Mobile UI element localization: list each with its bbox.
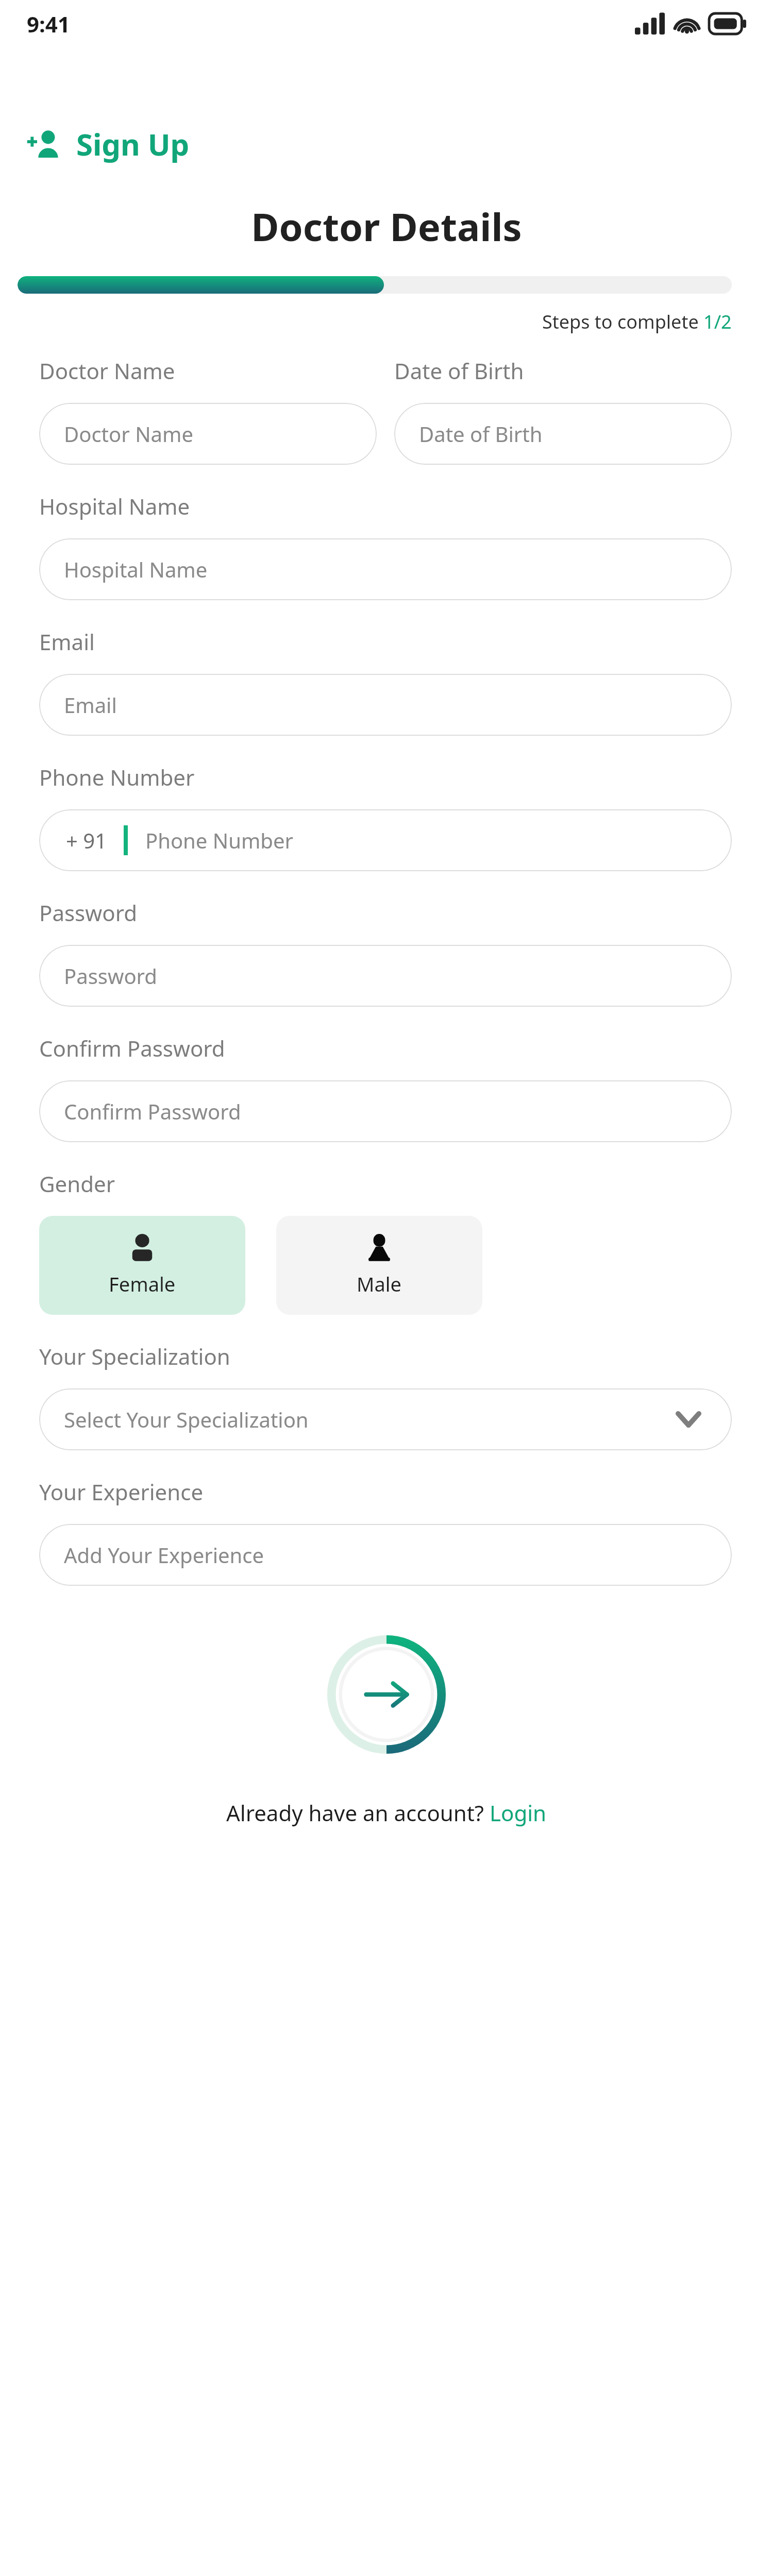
staticText: Gender	[39, 1169, 115, 1198]
staticText: Hospital Name	[64, 555, 208, 583]
button[interactable]: Sign Up	[27, 124, 190, 164]
button[interactable]: Date of Birth	[394, 403, 732, 465]
staticText: Doctor Name	[39, 356, 175, 385]
button[interactable]: Email	[39, 674, 732, 736]
button[interactable]: Select Your Specialization	[39, 1388, 732, 1450]
button[interactable]: Male	[276, 1216, 482, 1315]
button[interactable]: Doctor Name	[39, 403, 377, 465]
staticText: Password	[64, 962, 157, 990]
staticText: Email	[64, 691, 117, 719]
staticText: Doctor Name	[64, 420, 193, 448]
staticText: Select Your Specialization	[64, 1405, 309, 1433]
staticText: Male	[357, 1270, 402, 1297]
staticText: + 91	[66, 826, 107, 854]
button[interactable]: + 91	[39, 809, 732, 871]
staticText: Sign Up	[76, 124, 190, 164]
staticText: Already have an account? Login	[226, 1798, 547, 1827]
staticText: Add Your Experience	[64, 1541, 264, 1569]
staticText: Confirm Password	[64, 1097, 241, 1125]
button[interactable]: Hospital Name	[39, 538, 732, 600]
staticText: Doctor Details	[251, 200, 522, 252]
button[interactable]: Next step	[327, 1635, 446, 1754]
staticText: Email	[39, 627, 95, 656]
staticText: 9:41	[27, 9, 70, 39]
staticText: Confirm Password	[39, 1033, 225, 1063]
button[interactable]: Female	[39, 1216, 245, 1315]
staticText: Password	[39, 898, 137, 927]
staticText: Phone Number	[39, 762, 195, 792]
button[interactable]: Password	[39, 945, 732, 1007]
button[interactable]: Add Your Experience	[39, 1524, 732, 1586]
other: Open specialization list	[674, 1405, 703, 1434]
staticText: Steps to complete 1/2	[542, 309, 732, 334]
staticText: Phone Number	[145, 826, 293, 854]
button[interactable]: Already have an account? Login	[226, 1798, 547, 1827]
staticText: Female	[109, 1270, 176, 1297]
staticText: Date of Birth	[394, 356, 524, 385]
staticText: Your Experience	[39, 1477, 204, 1506]
staticText: Hospital Name	[39, 492, 190, 521]
staticText: Date of Birth	[419, 420, 543, 448]
button[interactable]: Confirm Password	[39, 1080, 732, 1142]
staticText: Your Specialization	[39, 1342, 230, 1371]
